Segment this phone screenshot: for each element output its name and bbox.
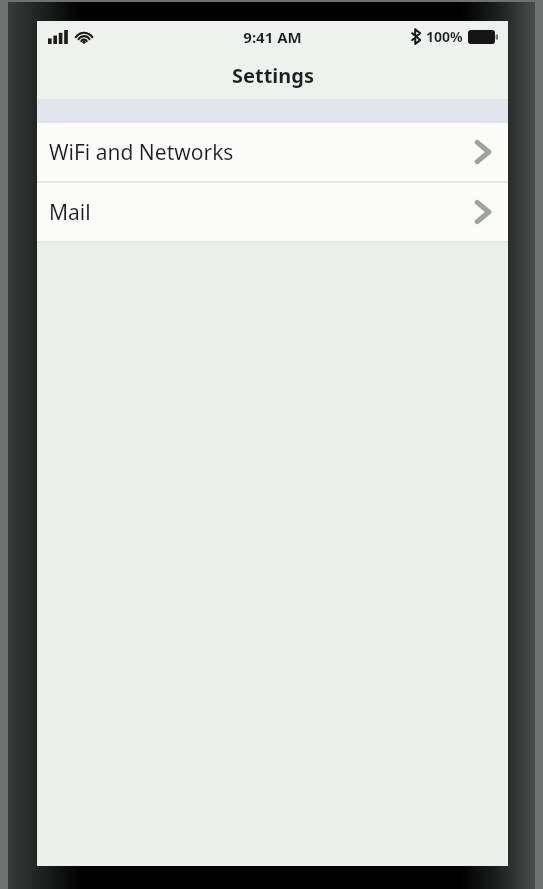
staticText: 100%: [426, 27, 463, 46]
button[interactable]: WiFi and Networks: [37, 123, 508, 181]
other: Open Mail: [475, 200, 490, 224]
button[interactable]: Mail: [37, 183, 508, 241]
other: Open WiFi and Networks: [475, 140, 490, 164]
staticText: Mail: [49, 198, 91, 227]
staticText: 9:41 AM: [243, 27, 302, 47]
staticText: WiFi and Networks: [49, 138, 234, 167]
staticText: Settings: [232, 62, 314, 89]
